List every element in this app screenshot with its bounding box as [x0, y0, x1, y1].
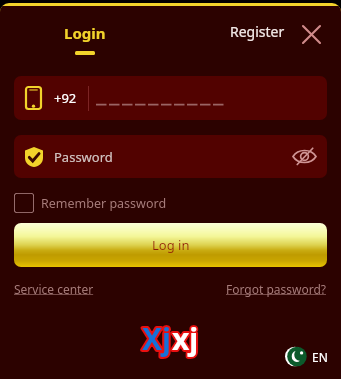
staticText: EN [312, 349, 328, 365]
button[interactable]: Forgot password? [226, 281, 327, 297]
staticText: Login [64, 23, 106, 43]
staticText: Xj [142, 318, 172, 359]
staticText: Log in [152, 236, 190, 254]
button[interactable]: EN [285, 346, 328, 367]
button[interactable]: Remember password [14, 193, 167, 213]
staticText: xj [172, 318, 199, 359]
button[interactable]: Show password [292, 144, 317, 169]
staticText: +92 [54, 89, 77, 107]
staticText: Remember password [41, 195, 167, 212]
button[interactable]: Register [230, 22, 285, 41]
staticText: Password [54, 148, 113, 166]
button[interactable]: Login [64, 23, 106, 55]
button[interactable]: Close [300, 23, 323, 46]
button[interactable]: Log in [14, 223, 327, 267]
staticText: Xj [142, 318, 172, 359]
button[interactable]: Password [14, 135, 327, 178]
staticText: xj [172, 318, 199, 359]
button[interactable]: Service center [14, 281, 94, 297]
button[interactable]: +92 [14, 76, 327, 120]
